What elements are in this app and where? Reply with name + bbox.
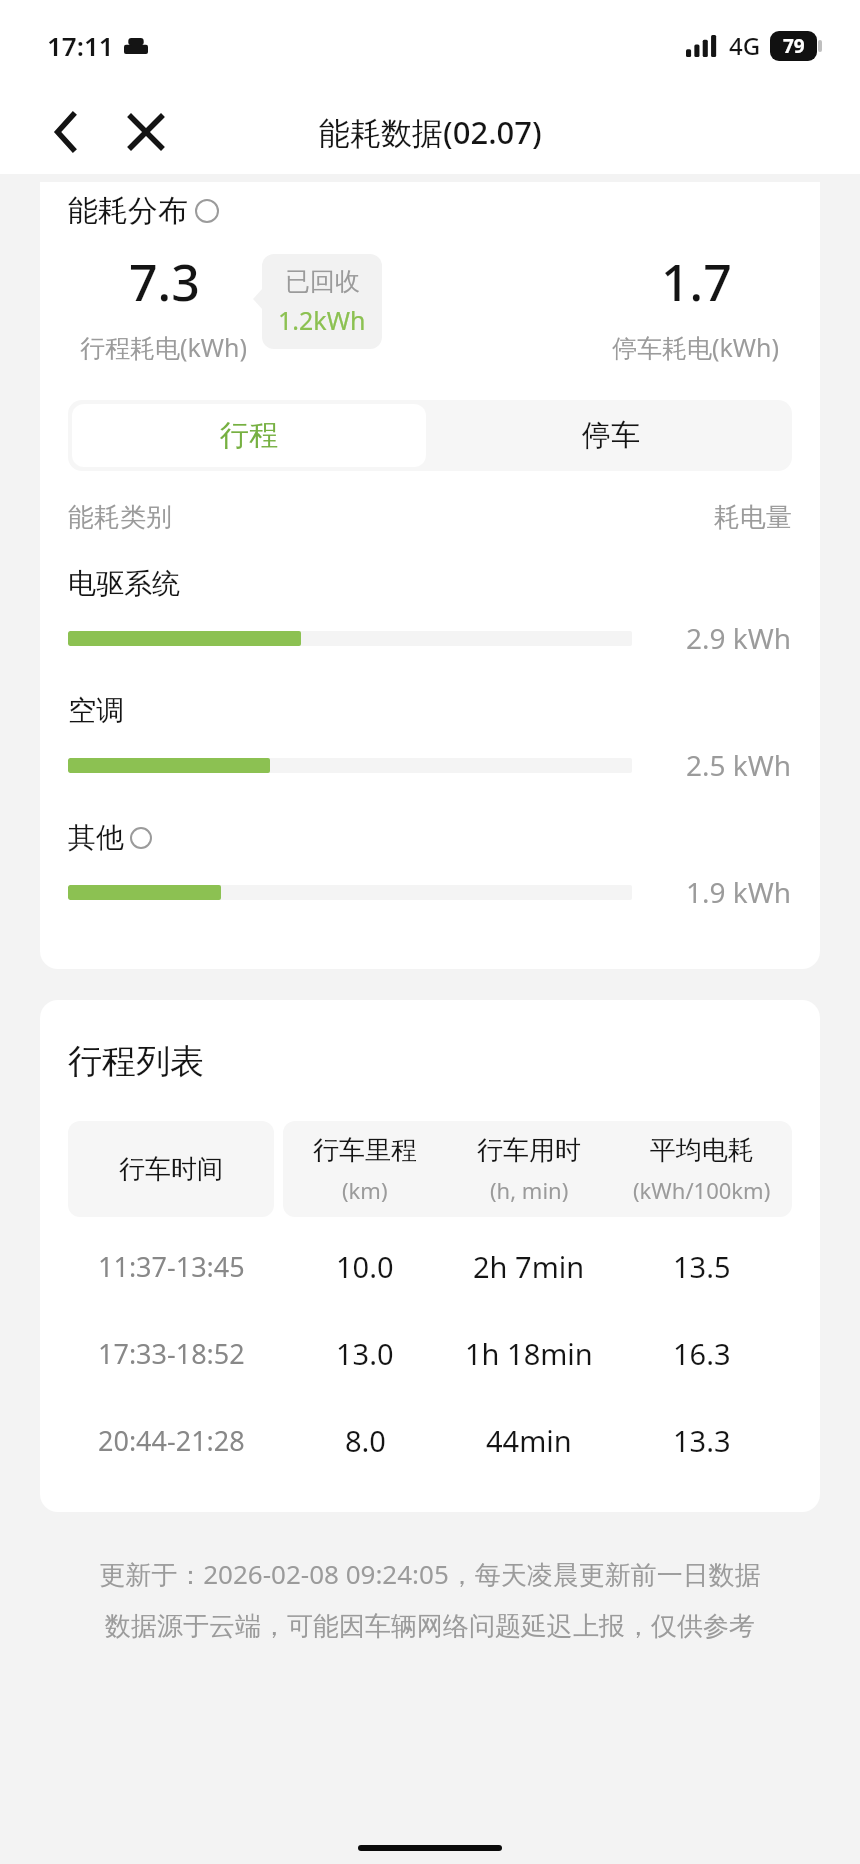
staticText: 2.5 kWh — [686, 746, 792, 784]
staticText: 行程列表 — [68, 1040, 204, 1083]
staticText: 16.3 — [673, 1334, 731, 1373]
staticText: 其他 — [68, 820, 124, 855]
staticText: 行车用时 — [477, 1134, 581, 1167]
staticText: 17:33-18:52 — [98, 1335, 245, 1372]
button[interactable]: 11:37-13:45 — [68, 1247, 792, 1286]
staticText: 1.2kWh — [278, 303, 366, 337]
staticText: 1.7 — [661, 248, 732, 316]
staticText: 79 — [783, 33, 805, 59]
staticText: 数据源于云端，可能因车辆网络问题延迟上报，仅供参考 — [105, 1610, 755, 1643]
button[interactable]: 17:33-18:52 — [68, 1334, 792, 1373]
staticText: 8.0 — [345, 1421, 386, 1460]
staticText: 13.3 — [673, 1421, 731, 1460]
staticText: 4G — [729, 29, 761, 62]
staticText: 空调 — [68, 693, 124, 728]
staticText: 已回收 — [285, 266, 360, 297]
staticText: (h, min) — [490, 1175, 569, 1205]
staticText: 13.5 — [673, 1247, 731, 1286]
button[interactable]: 20:44-21:28 — [68, 1421, 792, 1460]
staticText: 平均电耗 — [650, 1134, 754, 1167]
button[interactable]: 行程 — [72, 404, 426, 467]
staticText: 行车里程 — [313, 1134, 417, 1167]
staticText: 20:44-21:28 — [98, 1422, 245, 1459]
button[interactable]: Back — [38, 104, 94, 160]
staticText: 44min — [486, 1421, 572, 1460]
staticText: 11:37-13:45 — [98, 1248, 245, 1285]
staticText: 能耗分布 — [68, 192, 188, 230]
staticText: 耗电量 — [714, 501, 792, 534]
staticText: 1h 18min — [465, 1334, 593, 1373]
staticText: 更新于：2026-02-08 09:24:05，每天凌晨更新前一日数据 — [99, 1556, 761, 1592]
staticText: 停车 — [582, 417, 640, 454]
staticText: 2h 7min — [473, 1247, 585, 1286]
button[interactable]: Close — [118, 104, 174, 160]
staticText: 17:11 — [47, 28, 114, 63]
staticText: 2.9 kWh — [686, 619, 792, 657]
button[interactable]: 停车 — [430, 400, 792, 471]
staticText: (km) — [342, 1175, 388, 1205]
staticText: 10.0 — [336, 1247, 394, 1286]
staticText: 行车时间 — [119, 1153, 223, 1186]
staticText: 7.3 — [129, 248, 200, 316]
staticText: 电驱系统 — [68, 566, 180, 601]
staticText: 行程耗电(kWh) — [80, 330, 248, 364]
staticText: (kWh/100km) — [633, 1175, 771, 1205]
staticText: 能耗数据(02.07) — [319, 111, 542, 153]
staticText: 停车耗电(kWh) — [612, 330, 780, 364]
staticText: 13.0 — [336, 1334, 394, 1373]
staticText: 1.9 kWh — [686, 873, 792, 911]
staticText: 行程 — [220, 417, 278, 454]
staticText: 能耗类别 — [68, 501, 172, 534]
